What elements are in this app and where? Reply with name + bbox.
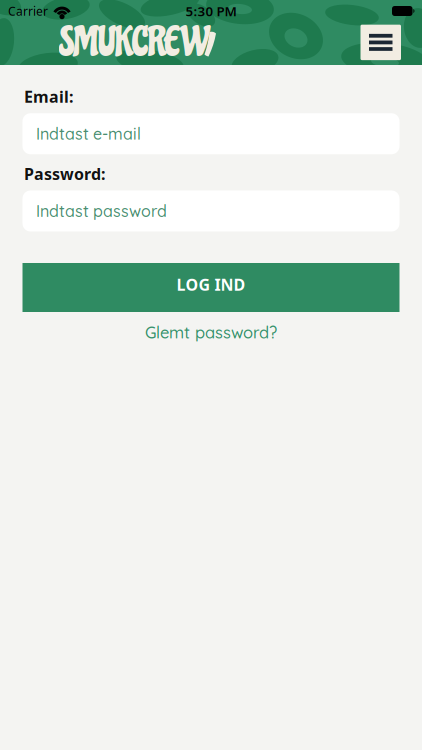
button[interactable]: Glemt password? <box>145 322 277 343</box>
staticText: SMUKCREW <box>58 18 207 67</box>
staticText: Password: <box>24 163 105 184</box>
staticText: LOG IND <box>176 274 245 295</box>
staticText: Indtast e-mail <box>36 124 141 144</box>
button[interactable]: Menu <box>360 25 401 60</box>
staticText: Carrier <box>8 3 48 19</box>
staticText: Email: <box>24 86 73 107</box>
staticText: 5:30 PM <box>185 2 236 20</box>
staticText: Glemt password? <box>145 322 277 343</box>
button[interactable]: LOG IND <box>22 263 399 312</box>
staticText: Indtast password <box>36 201 167 221</box>
button[interactable]: Email <box>22 113 399 154</box>
button[interactable]: Password <box>22 190 399 231</box>
